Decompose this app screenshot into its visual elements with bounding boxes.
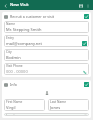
button[interactable]: More options bbox=[84, 2, 91, 9]
button[interactable]: Name bbox=[4, 21, 89, 33]
staticText: New Visit bbox=[10, 2, 77, 8]
button[interactable]: Save bbox=[77, 2, 84, 9]
button[interactable]: Info bbox=[4, 82, 89, 87]
button[interactable]: Confirm bbox=[84, 14, 89, 19]
button[interactable]: Entry bbox=[4, 35, 89, 47]
staticText: Location bbox=[6, 114, 19, 115]
staticText: Entry bbox=[6, 36, 14, 40]
button[interactable]: Visit Phone bbox=[4, 63, 89, 75]
staticText: Jones bbox=[50, 105, 87, 110]
staticText: Bodmin bbox=[6, 55, 87, 60]
staticText: Visit Phone bbox=[6, 64, 23, 68]
button[interactable]: Last Name bbox=[48, 99, 89, 111]
staticText: First Name bbox=[6, 100, 23, 104]
button[interactable]: First Name bbox=[4, 99, 45, 111]
button[interactable]: Call bbox=[82, 69, 87, 74]
button[interactable]: Back bbox=[2, 2, 9, 9]
staticText: Name bbox=[6, 22, 15, 26]
button[interactable]: Confirm info bbox=[84, 82, 89, 87]
staticText: City bbox=[6, 50, 12, 54]
staticText: Mr. Stepping Smith bbox=[6, 27, 87, 32]
staticText: Info bbox=[10, 82, 84, 87]
staticText: Recruit a customer or visit bbox=[10, 14, 84, 19]
staticText: 000 - 00000 bbox=[6, 69, 82, 74]
button[interactable]: Recruit a customer or visit bbox=[4, 14, 89, 19]
staticText: mail@company.net bbox=[6, 41, 82, 46]
button[interactable]: Verify email bbox=[82, 41, 87, 46]
staticText: Last Name bbox=[50, 100, 66, 104]
staticText: Virgil bbox=[6, 105, 43, 110]
button[interactable]: Location bbox=[4, 113, 89, 116]
button[interactable]: City bbox=[4, 49, 89, 61]
button[interactable]: Add photo bbox=[44, 90, 50, 96]
